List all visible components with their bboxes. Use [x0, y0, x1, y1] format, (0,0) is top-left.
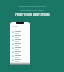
button[interactable]: [12, 46, 28, 50]
button[interactable]: [12, 58, 28, 62]
button[interactable]: [12, 42, 28, 46]
staticText: thousands of top stores: [20, 9, 44, 12]
button[interactable]: [12, 30, 28, 34]
button[interactable]: [12, 50, 28, 54]
button[interactable]: [12, 54, 28, 58]
staticText: Discover the best deals from: [18, 5, 46, 8]
button[interactable]: [12, 38, 28, 42]
button[interactable]: [12, 34, 28, 38]
staticText: FIND YOUR BEST ITEMS: [15, 13, 50, 17]
